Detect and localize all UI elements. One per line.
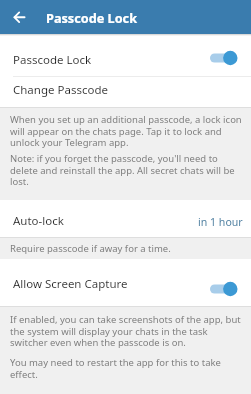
button[interactable]: Passcode Lock (0, 36, 251, 76)
staticText: in 1 hour (198, 215, 243, 229)
staticText: Passcode Lock (46, 9, 138, 26)
staticText: You may need to restart the app for this… (10, 356, 221, 380)
staticText: Change Passcode (13, 82, 108, 98)
staticText: Auto-lock (13, 213, 64, 229)
button[interactable]: Change Passcode (0, 77, 251, 107)
button[interactable]: Allow Screen Capture (0, 259, 251, 306)
staticText: Require passcode if away for a time. (10, 242, 171, 255)
button[interactable] (14, 12, 25, 23)
staticText: Note: if you forget the passcode, you'll… (10, 152, 235, 187)
staticText: If enabled, you can take screenshots of … (10, 313, 241, 348)
staticText: Allow Screen Capture (13, 276, 128, 292)
staticText: When you set up an additional passcode, … (10, 113, 242, 148)
staticText: Passcode Lock (13, 52, 92, 68)
button[interactable]: Auto-lock (0, 200, 251, 237)
